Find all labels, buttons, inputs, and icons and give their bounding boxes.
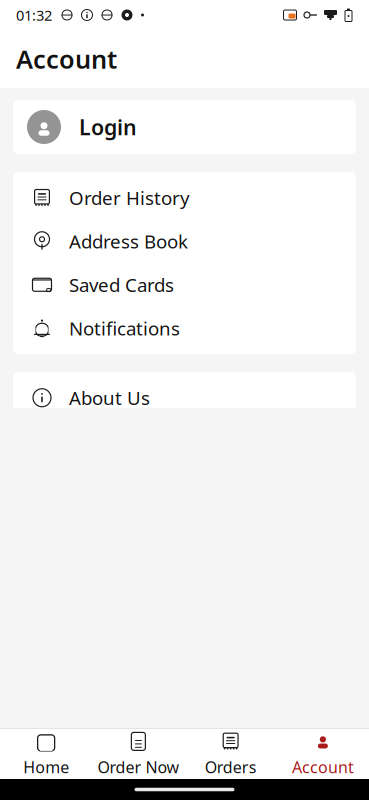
button[interactable]: Orders xyxy=(184,730,277,778)
button[interactable]: Notifications xyxy=(13,306,356,350)
staticText: Order History xyxy=(69,185,190,210)
staticText: Saved Cards xyxy=(69,272,174,297)
staticText: 01:32 xyxy=(16,5,52,25)
staticText: Orders xyxy=(205,756,257,778)
staticText: Account xyxy=(16,42,117,76)
button[interactable]: Order History xyxy=(13,176,356,219)
staticText: About Us xyxy=(69,385,150,410)
staticText: Order Now xyxy=(97,756,179,778)
button[interactable]: Order Now xyxy=(92,730,184,778)
staticText: Login xyxy=(79,113,137,141)
staticText: Account xyxy=(292,756,354,778)
button[interactable]: Home xyxy=(0,730,92,778)
button[interactable]: Address Book xyxy=(13,219,356,263)
button[interactable]: Account xyxy=(277,730,369,778)
staticText: Home xyxy=(23,756,69,778)
button[interactable]: About Us xyxy=(13,376,356,419)
staticText: Notifications xyxy=(69,316,180,341)
button[interactable]: Saved Cards xyxy=(13,263,356,306)
staticText: Address Book xyxy=(69,229,188,254)
button[interactable]: Login xyxy=(13,100,356,154)
